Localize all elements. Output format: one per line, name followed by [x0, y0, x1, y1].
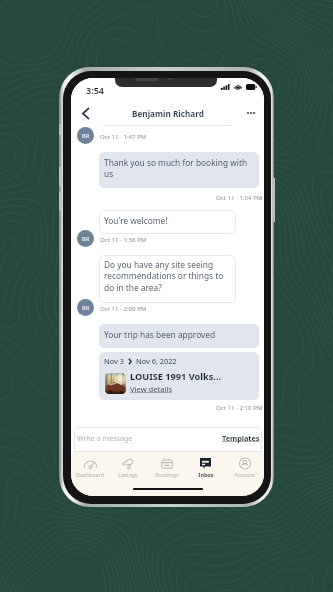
- staticText: Benjamin Richard: [132, 108, 204, 119]
- button[interactable]: Dashboard: [71, 457, 109, 479]
- staticText: Templates: [222, 433, 260, 443]
- button[interactable]: Thank you so much for booking with us: [99, 152, 259, 188]
- staticText: Listings: [118, 471, 138, 478]
- staticText: Your trip has been approved: [104, 329, 216, 340]
- staticText: BR: [82, 132, 90, 140]
- staticText: Write a message: [77, 433, 133, 443]
- staticText: View details: [130, 384, 173, 394]
- staticText: Nov 3: [104, 356, 124, 366]
- button[interactable]: Templates: [219, 430, 262, 446]
- button[interactable]: Inbox: [186, 457, 225, 479]
- button[interactable]: You're welcome!: [99, 210, 236, 234]
- button[interactable]: Your trip has been approved: [99, 324, 259, 348]
- staticText: Account: [234, 471, 255, 478]
- staticText: Oct 11 · 2:10 PM: [216, 403, 263, 411]
- staticText: Bookings: [155, 471, 179, 478]
- button[interactable]: Listings: [109, 457, 147, 479]
- button[interactable]: Bookings: [147, 457, 186, 479]
- staticText: Oct 11 · 1:47 PM: [100, 132, 147, 140]
- button[interactable]: More options: [239, 101, 263, 125]
- staticText: Inbox: [198, 471, 214, 478]
- staticText: Dashboard: [76, 471, 104, 478]
- staticText: Oct 11 · 2:09 PM: [100, 304, 147, 312]
- staticText: BR: [82, 304, 90, 312]
- staticText: Do you have any site seeing recommendati…: [104, 259, 232, 294]
- staticText: Oct 11 · 1:54 PM: [216, 193, 263, 201]
- staticText: LOUISE 1991 Volks...: [130, 370, 222, 383]
- staticText: Nov 6, 2022: [136, 356, 177, 366]
- staticText: Oct 11 · 1:56 PM: [100, 235, 147, 243]
- staticText: Thank you so much for booking with us: [104, 157, 254, 180]
- button[interactable]: Do you have any site seeing recommendati…: [99, 255, 236, 303]
- staticText: BR: [82, 235, 90, 243]
- button[interactable]: Back: [73, 101, 97, 125]
- staticText: 3:54: [86, 84, 104, 96]
- staticText: You're welcome!: [104, 215, 168, 226]
- button[interactable]: Nov 3: [99, 352, 259, 400]
- button[interactable]: Account: [225, 457, 264, 479]
